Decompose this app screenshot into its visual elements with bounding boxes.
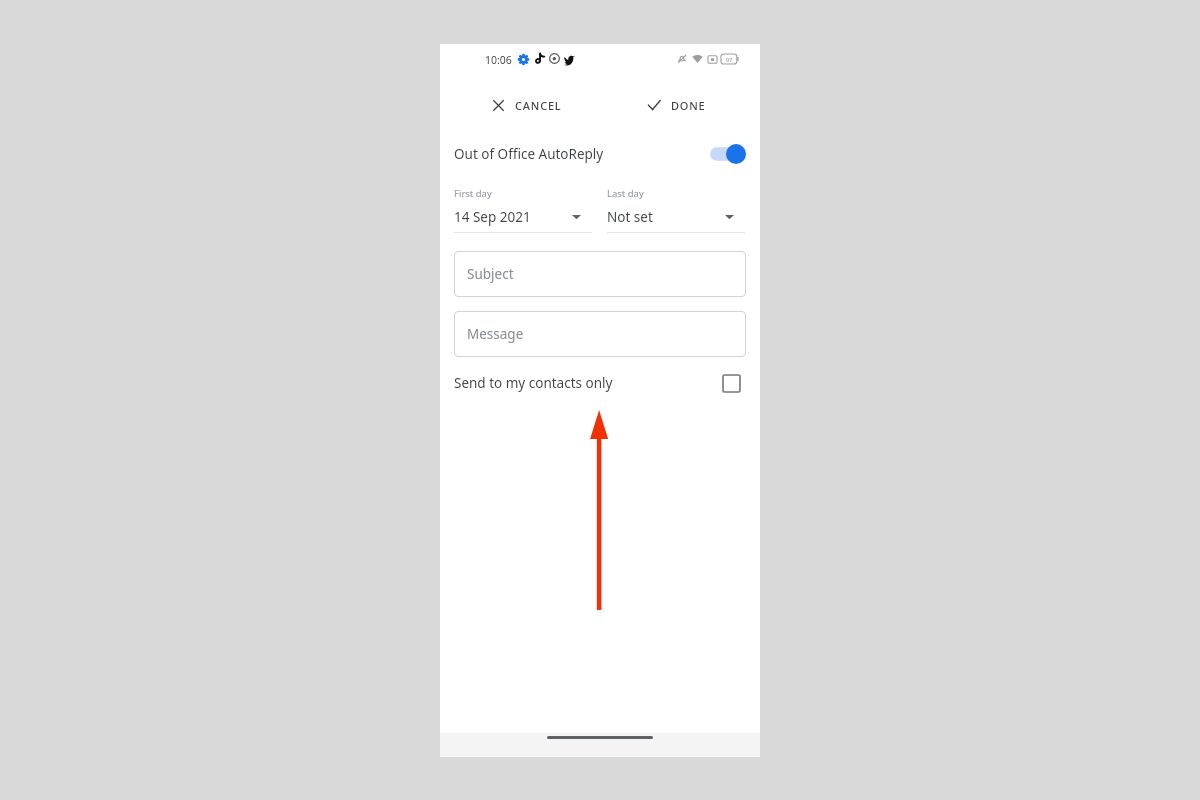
button[interactable]: Message: [454, 311, 746, 357]
staticText: Send to my contacts only: [454, 374, 613, 392]
button[interactable]: DONE: [643, 86, 710, 124]
staticText: CANCEL: [515, 98, 562, 113]
staticText: First day: [454, 187, 492, 200]
button[interactable]: Last day: [607, 187, 745, 233]
staticText: 14 Sep 2021: [454, 208, 531, 226]
button[interactable]: CANCEL: [488, 86, 566, 124]
button[interactable]: Out of Office AutoReply toggle: [710, 144, 746, 164]
button[interactable]: Send to my contacts only: [440, 366, 760, 400]
staticText: Message: [467, 325, 524, 343]
button[interactable]: First day: [454, 187, 592, 233]
button[interactable]: Out of Office AutoReply: [440, 134, 760, 174]
button[interactable]: Subject: [454, 251, 746, 297]
staticText: Out of Office AutoReply: [454, 145, 604, 163]
staticText: 97: [726, 56, 733, 63]
staticText: DONE: [671, 98, 706, 113]
staticText: 10:06: [485, 53, 512, 67]
staticText: Last day: [607, 187, 644, 200]
staticText: Subject: [467, 265, 514, 283]
button[interactable]: Send to my contacts only checkbox: [723, 375, 740, 392]
staticText: Not set: [607, 208, 653, 226]
